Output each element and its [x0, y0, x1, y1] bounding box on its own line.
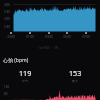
- staticText: 2:30: [4, 25, 10, 29]
- staticText: 03:00: [45, 35, 53, 39]
- staticText: 01:00: [26, 35, 34, 39]
- staticText: 153: [69, 68, 82, 78]
- staticText: 80: [4, 92, 8, 96]
- staticText: 4:00: [4, 3, 10, 7]
- button[interactable]: 23:00: [4, 32, 18, 39]
- staticText: 最大: [72, 79, 78, 83]
- button[interactable]: 05:00: [60, 32, 74, 39]
- staticText: 1月15日 ・ 7h: [38, 46, 59, 50]
- staticText: 23:00: [7, 35, 15, 39]
- button[interactable]: 119: [0, 68, 50, 83]
- staticText: 05:00: [63, 35, 71, 39]
- button[interactable]: 01:00: [23, 32, 37, 39]
- button[interactable]: 153: [50, 68, 100, 83]
- button[interactable]: 07:00: [79, 32, 93, 39]
- button[interactable]: 03:00: [42, 32, 56, 39]
- staticText: 平均: [22, 79, 28, 83]
- staticText: 119: [19, 68, 32, 78]
- staticText: 3:30: [4, 10, 10, 14]
- staticText: 07:00: [82, 35, 90, 39]
- staticText: 160: [4, 85, 10, 89]
- staticText: 3:00: [4, 17, 10, 21]
- staticText: 心拍 (bpm): [3, 57, 29, 64]
